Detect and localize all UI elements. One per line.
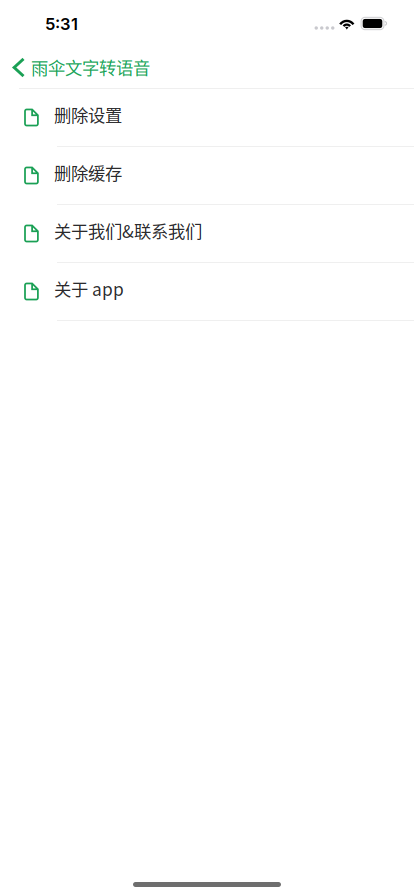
button[interactable]: 关于我们&联系我们 [0,205,414,263]
staticText: 删除设置 [54,102,122,127]
button[interactable]: 返回 雨伞文字转语音 [0,44,162,88]
staticText: 关于我们&联系我们 [54,218,202,243]
staticText: 雨伞文字转语音 [31,54,150,80]
staticText: 5:31 [45,14,78,34]
button[interactable]: 删除设置 [0,89,414,147]
button[interactable]: 删除缓存 [0,147,414,205]
staticText: 删除缓存 [54,160,122,185]
staticText: 关于 app [54,276,124,301]
button[interactable]: 关于 app [0,263,414,321]
